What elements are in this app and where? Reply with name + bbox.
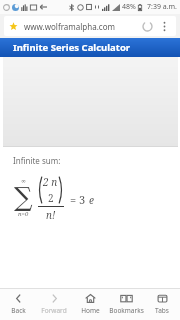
staticText: e [89, 193, 94, 207]
staticText: Home [81, 306, 100, 315]
staticText: n! [46, 208, 56, 222]
button[interactable]: Infinite Series Calculator [0, 38, 180, 57]
staticText: n=0 [18, 210, 29, 218]
staticText: Forward [41, 306, 67, 315]
button[interactable]: Stop loading [139, 18, 155, 34]
staticText: 7:39 a.m. [147, 2, 177, 12]
staticText: Infinite sum: [13, 155, 61, 166]
staticText: = 3 [70, 192, 89, 207]
staticText: 2 [48, 191, 54, 205]
staticText: www.wolframalpha.com [24, 21, 139, 32]
staticText: Bookmarks [109, 306, 144, 315]
button[interactable]: Home [72, 289, 108, 320]
staticText: Tabs [155, 306, 169, 315]
staticText: ∞ [21, 177, 26, 184]
button[interactable]: Bookmarks [108, 289, 144, 320]
button[interactable]: More options [157, 19, 171, 33]
button[interactable]: www.wolframalpha.com [4, 16, 176, 36]
button[interactable]: Tabs [144, 289, 180, 320]
staticText: Infinite Series Calculator [13, 41, 131, 54]
staticText: Back [11, 306, 26, 315]
staticText: 2 n [43, 175, 58, 189]
button[interactable] [3, 57, 178, 146]
staticText: ∑ [14, 182, 33, 212]
button[interactable]: Forward [36, 289, 72, 320]
staticText: 48% [122, 2, 136, 12]
button[interactable]: Back [0, 289, 36, 320]
